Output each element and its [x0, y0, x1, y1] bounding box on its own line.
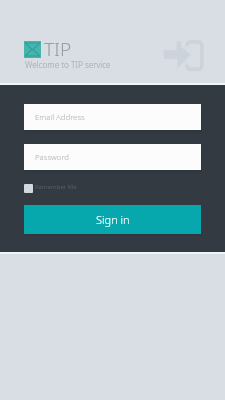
staticText: Email Address — [35, 112, 85, 123]
button[interactable]: Sign in — [24, 205, 201, 234]
staticText: Welcome to TIP service — [25, 59, 111, 70]
button[interactable]: Remember Me — [24, 184, 77, 195]
staticText: Remember Me — [35, 183, 77, 191]
staticText: Password — [35, 152, 69, 163]
button[interactable]: Sign in — [161, 38, 205, 72]
staticText: Sign in — [96, 212, 130, 227]
staticText: TIP — [44, 36, 72, 62]
button[interactable]: Password — [24, 144, 201, 170]
button[interactable]: Email Address — [24, 104, 201, 130]
